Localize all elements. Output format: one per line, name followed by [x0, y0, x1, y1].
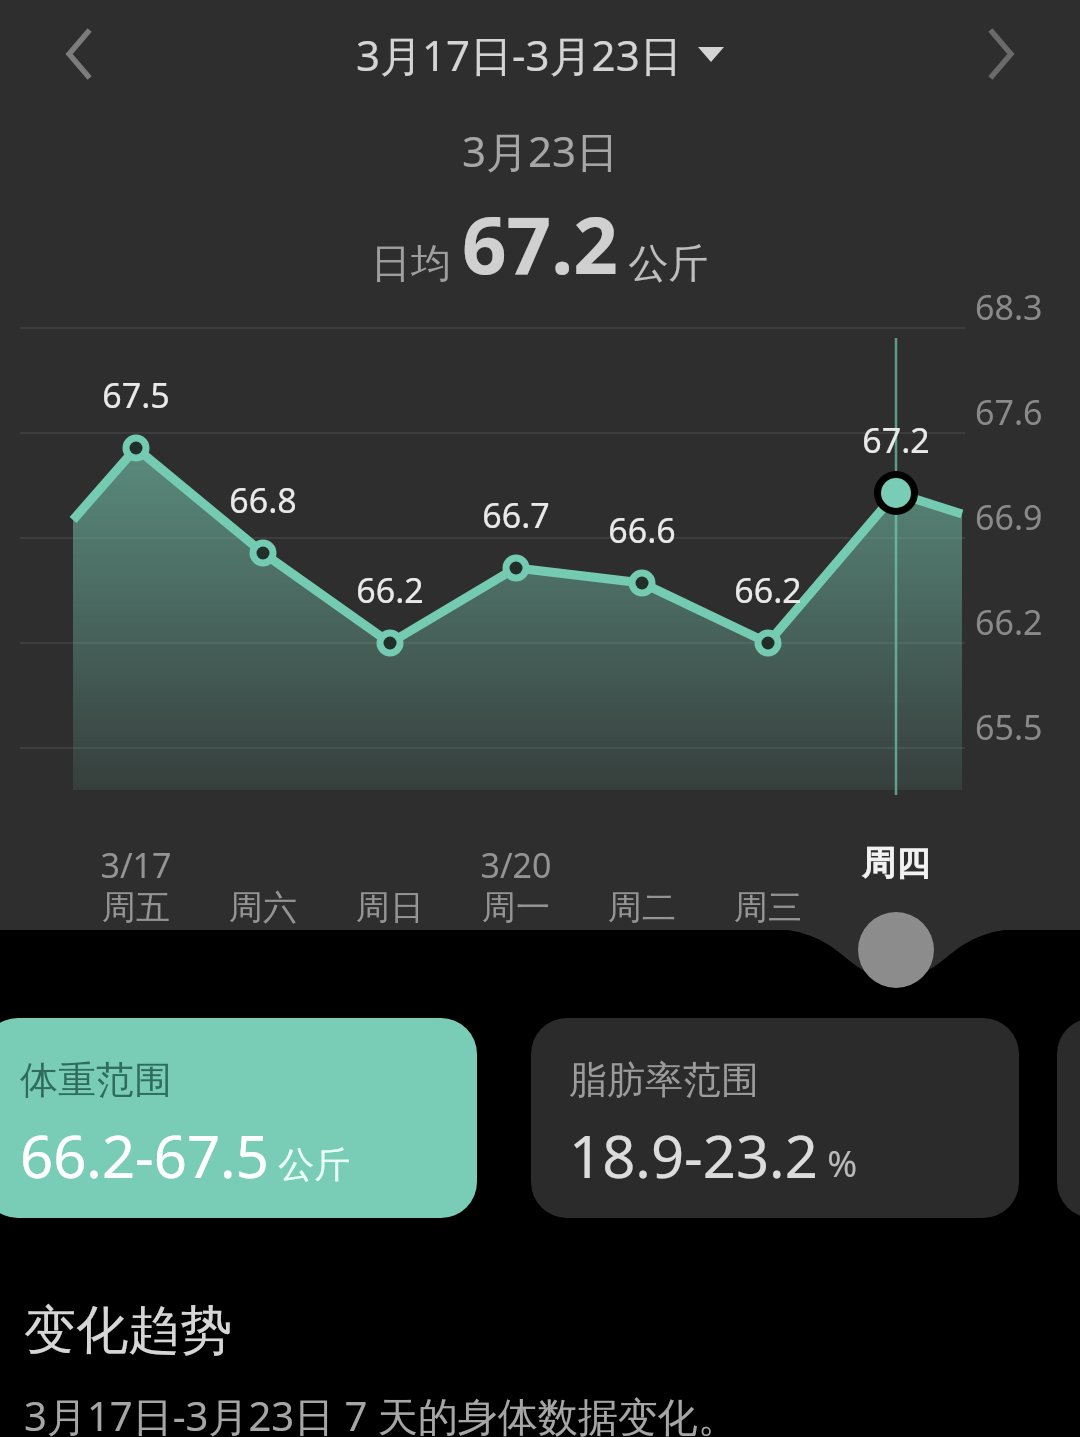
staticText: 3/20 [456, 842, 576, 888]
button[interactable]: 体重范围 [0, 1018, 477, 1218]
staticText: 3月17日-3月23日 [356, 26, 682, 83]
staticText: 周五 [76, 886, 196, 929]
staticText: 周四 [836, 842, 956, 885]
staticText: 67.2 [462, 191, 618, 297]
staticText: 68.3 [975, 284, 1043, 330]
staticText: 66.9 [975, 494, 1043, 540]
staticText: 公斤 [618, 234, 709, 289]
staticText: 66.2-67.5 [20, 1116, 269, 1195]
staticText: 周三 [708, 886, 828, 929]
staticText: 日均 [371, 234, 462, 289]
staticText: 66.8 [203, 477, 323, 523]
staticText: 周二 [582, 886, 702, 929]
button[interactable] [1057, 1018, 1080, 1218]
staticText: 66.7 [456, 492, 576, 538]
staticText: 66.2 [975, 599, 1043, 645]
staticText: 3月17日-3月23日 7 天的身体数据变化。 [24, 1388, 738, 1437]
staticText: 周一 [456, 886, 576, 929]
staticText: % [818, 1139, 858, 1188]
staticText: 3/17 [76, 842, 196, 888]
staticText: 变化趋势 [24, 1298, 232, 1364]
staticText: 18.9-23.2 [569, 1116, 818, 1195]
button[interactable]: 3月17日-3月23日 [0, 26, 1080, 83]
staticText: 67.5 [76, 372, 196, 418]
staticText: 周日 [330, 886, 450, 929]
staticText: 66.2 [708, 567, 828, 613]
staticText: 66.2 [330, 567, 450, 613]
button[interactable]: Previous week [40, 14, 120, 94]
staticText: 66.6 [582, 507, 702, 553]
staticText: 脂肪率范围 [569, 1056, 759, 1104]
staticText: 67.2 [836, 417, 956, 463]
button[interactable]: Next week [960, 14, 1040, 94]
button[interactable]: 脂肪率范围 [531, 1018, 1019, 1218]
staticText: 公斤 [269, 1139, 351, 1188]
staticText: 65.5 [975, 704, 1043, 750]
staticText: 体重范围 [20, 1056, 172, 1104]
staticText: 3月23日 [462, 122, 619, 179]
staticText: 周六 [203, 886, 323, 929]
staticText: 67.6 [975, 389, 1043, 435]
